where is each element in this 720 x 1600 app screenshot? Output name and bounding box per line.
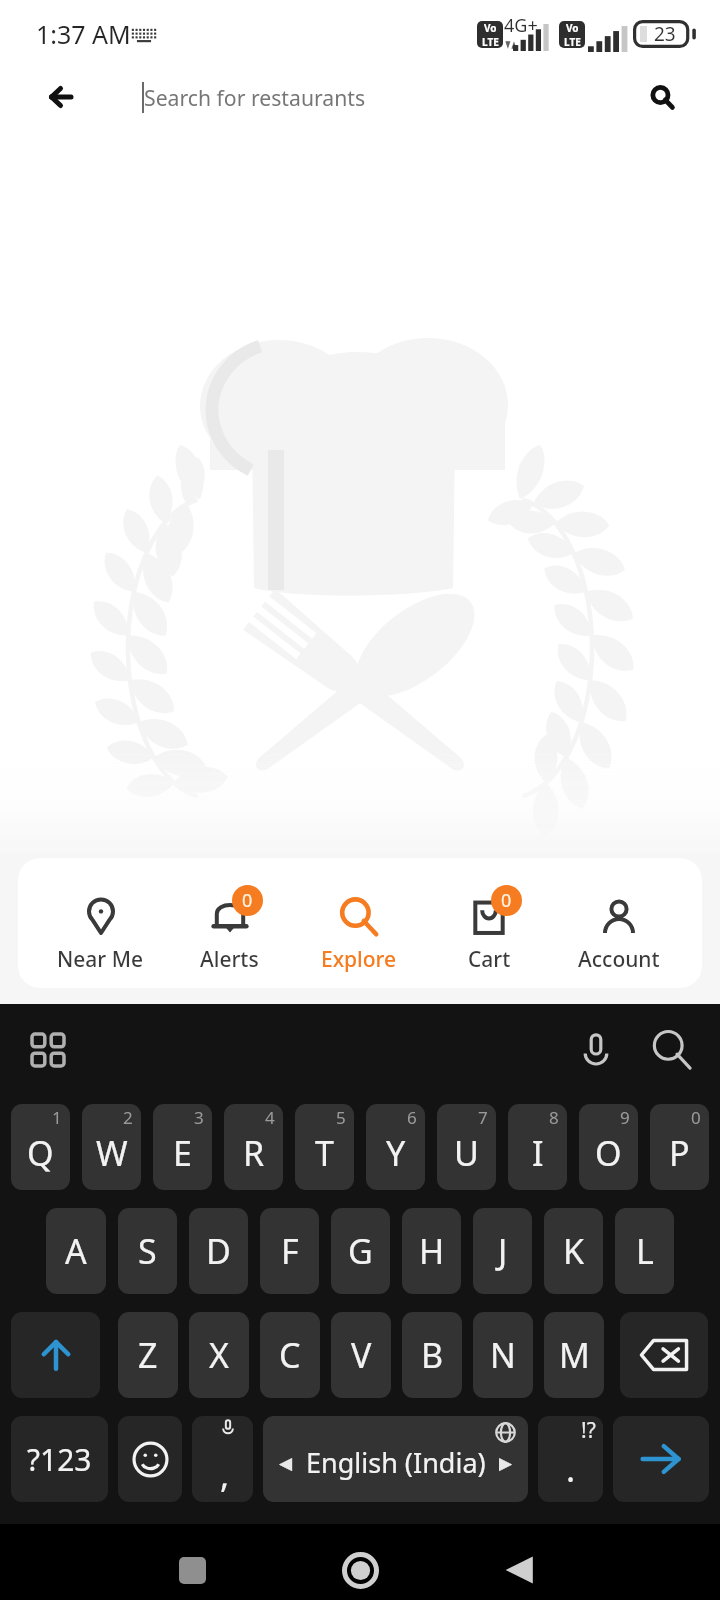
button[interactable]: Clipboard — [22, 1024, 74, 1076]
button[interactable]: V — [331, 1312, 391, 1398]
button[interactable]: . — [538, 1416, 603, 1502]
button[interactable]: Home — [318, 1528, 402, 1600]
staticText: I — [532, 1130, 544, 1176]
staticText: J — [498, 1228, 508, 1274]
button[interactable]: N — [473, 1312, 533, 1398]
button[interactable]: D — [189, 1208, 248, 1294]
button[interactable]: O — [579, 1104, 638, 1190]
staticText: 0 — [691, 1106, 701, 1129]
button[interactable]: Near Me — [36, 863, 165, 984]
button[interactable]: , — [192, 1416, 253, 1502]
staticText: Vo — [484, 21, 497, 35]
button[interactable]: I — [508, 1104, 567, 1190]
staticText: 0 — [242, 888, 253, 913]
staticText: LTE — [564, 35, 581, 48]
button[interactable]: B — [402, 1312, 462, 1398]
button[interactable]: K — [544, 1208, 603, 1294]
button[interactable] — [620, 1312, 708, 1398]
button[interactable] — [11, 1312, 100, 1398]
button[interactable]: G — [331, 1208, 390, 1294]
button[interactable]: E — [153, 1104, 212, 1190]
staticText: R — [243, 1130, 265, 1176]
staticText: Y — [386, 1130, 406, 1176]
staticText: V — [351, 1332, 372, 1378]
staticText: P — [669, 1130, 690, 1176]
staticText: , — [220, 1452, 230, 1498]
staticText: 23 — [654, 21, 676, 47]
staticText: L — [636, 1228, 654, 1274]
staticText: Account — [578, 945, 660, 974]
staticText: D — [206, 1228, 231, 1274]
staticText: Cart — [468, 945, 511, 974]
button[interactable]: Q — [11, 1104, 70, 1190]
button[interactable]: X — [189, 1312, 249, 1398]
staticText: C — [279, 1332, 301, 1378]
button[interactable]: W — [82, 1104, 141, 1190]
staticText: K — [563, 1228, 585, 1274]
staticText: ?123 — [27, 1439, 92, 1480]
staticText: 1 — [52, 1106, 62, 1129]
button[interactable]: L — [615, 1208, 674, 1294]
staticText: X — [209, 1332, 229, 1378]
staticText: . — [566, 1446, 576, 1492]
staticText: Search for restaurants — [144, 83, 366, 112]
button[interactable]: Back — [478, 1528, 562, 1600]
staticText: F — [281, 1228, 299, 1274]
staticText: 6 — [407, 1106, 417, 1129]
staticText: 7 — [478, 1106, 488, 1129]
staticText: English (India) — [306, 1444, 486, 1481]
staticText: T — [315, 1130, 334, 1176]
button[interactable]: ?123 — [11, 1416, 108, 1502]
button[interactable]: 0 — [165, 863, 294, 984]
staticText: U — [454, 1130, 479, 1176]
button[interactable]: H — [402, 1208, 461, 1294]
button[interactable]: Explore — [294, 863, 424, 984]
button[interactable]: F — [260, 1208, 319, 1294]
staticText: Near Me — [57, 945, 144, 974]
staticText: Q — [27, 1130, 54, 1176]
staticText: ◀ — [279, 1453, 293, 1473]
button[interactable]: Keyboard search — [642, 1020, 702, 1080]
staticText: Z — [138, 1332, 158, 1378]
staticText: H — [419, 1228, 445, 1274]
button[interactable]: C — [260, 1312, 320, 1398]
button[interactable]: Voice input — [566, 1020, 626, 1080]
staticText: 5 — [336, 1106, 346, 1129]
staticText: M — [559, 1332, 590, 1378]
button[interactable]: Back — [32, 68, 90, 126]
button[interactable] — [613, 1416, 709, 1502]
staticText: O — [595, 1130, 622, 1176]
button[interactable]: Search — [633, 68, 691, 126]
staticText: ▶ — [499, 1453, 513, 1473]
button[interactable]: A — [46, 1208, 106, 1294]
button[interactable]: S — [118, 1208, 177, 1294]
staticText: !? — [581, 1416, 596, 1445]
button[interactable]: R — [224, 1104, 283, 1190]
staticText: G — [348, 1228, 373, 1274]
button[interactable]: Y — [366, 1104, 425, 1190]
button[interactable]: Recents — [150, 1528, 234, 1600]
button[interactable] — [118, 1416, 182, 1502]
button[interactable]: P — [650, 1104, 709, 1190]
staticText: Alerts — [200, 945, 259, 974]
staticText: 1:37 AM — [36, 17, 131, 51]
button[interactable]: T — [295, 1104, 354, 1190]
staticText: 0 — [501, 888, 512, 913]
staticText: LTE — [482, 35, 499, 48]
button[interactable]: J — [473, 1208, 532, 1294]
staticText: E — [173, 1130, 192, 1176]
staticText: B — [421, 1332, 444, 1378]
staticText: 9 — [620, 1106, 630, 1129]
staticText: N — [490, 1332, 516, 1378]
button[interactable]: ◀ — [263, 1416, 528, 1502]
staticText: Vo — [566, 21, 579, 35]
staticText: S — [138, 1228, 157, 1274]
button[interactable]: U — [437, 1104, 496, 1190]
button[interactable]: Account — [554, 863, 684, 984]
button[interactable]: 0 — [424, 863, 554, 984]
button[interactable]: Z — [118, 1312, 178, 1398]
staticText: 3 — [194, 1106, 204, 1129]
button[interactable]: M — [544, 1312, 604, 1398]
staticText: 2 — [123, 1106, 133, 1129]
staticText: Explore — [321, 945, 397, 974]
